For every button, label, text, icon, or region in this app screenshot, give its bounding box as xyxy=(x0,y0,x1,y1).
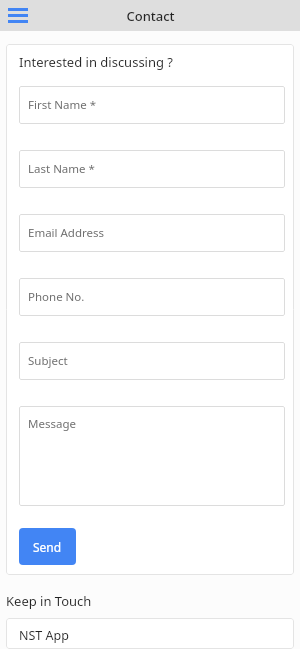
button[interactable]: NST App xyxy=(6,618,294,649)
staticText: Interested in discussing ? xyxy=(19,53,174,71)
staticText: Subject xyxy=(28,353,68,369)
staticText: Contact xyxy=(126,7,175,25)
staticText: Keep in Touch xyxy=(6,592,92,610)
staticText: Send xyxy=(33,539,62,555)
button[interactable]: Send xyxy=(19,528,76,565)
staticText: Phone No. xyxy=(28,289,85,305)
staticText: NST App xyxy=(19,627,69,644)
staticText: Last Name * xyxy=(28,161,95,177)
staticText: koteshwor 32 kathmandu xyxy=(19,647,170,649)
staticText: Message xyxy=(28,416,76,432)
button[interactable]: Open navigation menu xyxy=(8,8,28,24)
staticText: First Name * xyxy=(28,97,97,113)
button[interactable]: Subject xyxy=(19,342,285,380)
button[interactable]: Email Address xyxy=(19,214,285,252)
button[interactable]: First Name * xyxy=(19,86,285,124)
button[interactable]: Last Name * xyxy=(19,150,285,188)
button[interactable]: Phone No. xyxy=(19,278,285,316)
staticText: Email Address xyxy=(28,225,105,241)
button[interactable]: Message xyxy=(19,406,285,506)
